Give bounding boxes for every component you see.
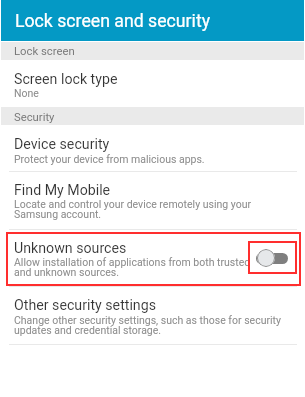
staticText: Change other security settings, such as … [14, 314, 281, 337]
staticText: Unknown sources [14, 240, 127, 257]
staticText: Security [14, 111, 55, 124]
button[interactable]: Device security [0, 125, 305, 171]
button[interactable]: Screen lock type [0, 60, 305, 107]
staticText: None [14, 87, 39, 99]
staticText: Lock screen and security [15, 11, 211, 32]
staticText: Locate and control your device remotely … [14, 198, 252, 221]
button[interactable]: Unknown sources [0, 230, 305, 286]
button[interactable]: Unknown sources switch, off [252, 243, 294, 273]
button[interactable]: Lock screen and security [1, 0, 304, 41]
staticText: Lock screen [14, 45, 75, 58]
staticText: Protect your device from malicious apps. [14, 153, 205, 165]
staticText: Find My Mobile [14, 182, 111, 199]
staticText: Other security settings [14, 297, 156, 314]
staticText: Device security [14, 136, 110, 153]
staticText: Allow installation of applications from … [14, 256, 251, 279]
staticText: Screen lock type [14, 71, 118, 88]
button[interactable]: Find My Mobile [0, 172, 305, 229]
button[interactable]: Other security settings [0, 287, 305, 344]
